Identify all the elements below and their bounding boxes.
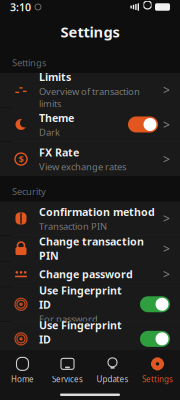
button[interactable]: $ bbox=[0, 142, 180, 176]
staticText: View exchange rates bbox=[39, 160, 126, 173]
staticText: For password bbox=[39, 313, 98, 325]
staticText: > bbox=[163, 266, 170, 282]
staticText: $ bbox=[18, 153, 23, 165]
button[interactable]: Updates bbox=[90, 352, 135, 389]
button[interactable]: Change transaction PIN bbox=[0, 236, 180, 261]
staticText: Services bbox=[52, 374, 83, 384]
staticText: > bbox=[163, 151, 170, 167]
staticText: Theme bbox=[39, 111, 74, 125]
staticText: > bbox=[163, 241, 170, 256]
staticText: Settings bbox=[12, 56, 46, 69]
staticText: Confirmation method bbox=[39, 205, 155, 219]
staticText: > bbox=[163, 82, 170, 98]
button[interactable]: Use Fingerprint ID bbox=[0, 287, 180, 321]
button[interactable]: Settings bbox=[135, 352, 180, 389]
staticText: Settings bbox=[142, 374, 173, 384]
button[interactable]: Services bbox=[45, 352, 90, 389]
staticText: Limits bbox=[39, 70, 71, 84]
staticText: Change password bbox=[39, 267, 133, 281]
staticText: Overview of transaction limits bbox=[39, 85, 140, 110]
staticText: Transaction PIN bbox=[39, 220, 107, 232]
button[interactable]: Limits bbox=[0, 73, 180, 107]
staticText: Security bbox=[12, 185, 46, 197]
staticText: For transaction PIN bbox=[39, 347, 122, 360]
staticText: FX Rate bbox=[39, 145, 79, 159]
button[interactable]: Home bbox=[0, 352, 45, 389]
button[interactable]: Change password bbox=[0, 262, 180, 287]
staticText: Home bbox=[11, 374, 34, 384]
button[interactable]: Confirmation method bbox=[0, 201, 180, 235]
staticText: Account bbox=[12, 365, 47, 377]
staticText: Settings bbox=[60, 22, 119, 41]
button[interactable]: Use Fingerprint ID bbox=[0, 322, 180, 356]
staticText: Change transaction PIN bbox=[39, 234, 144, 263]
staticText: > bbox=[163, 116, 170, 132]
staticText: > bbox=[163, 210, 170, 226]
staticText: Dark bbox=[39, 126, 60, 138]
staticText: Updates bbox=[96, 374, 128, 384]
staticText: Use Fingerprint ID bbox=[39, 283, 122, 312]
staticText: 3:10 bbox=[10, 0, 31, 14]
staticText: Use Fingerprint ID bbox=[39, 318, 122, 346]
button[interactable]: Theme bbox=[0, 107, 180, 141]
